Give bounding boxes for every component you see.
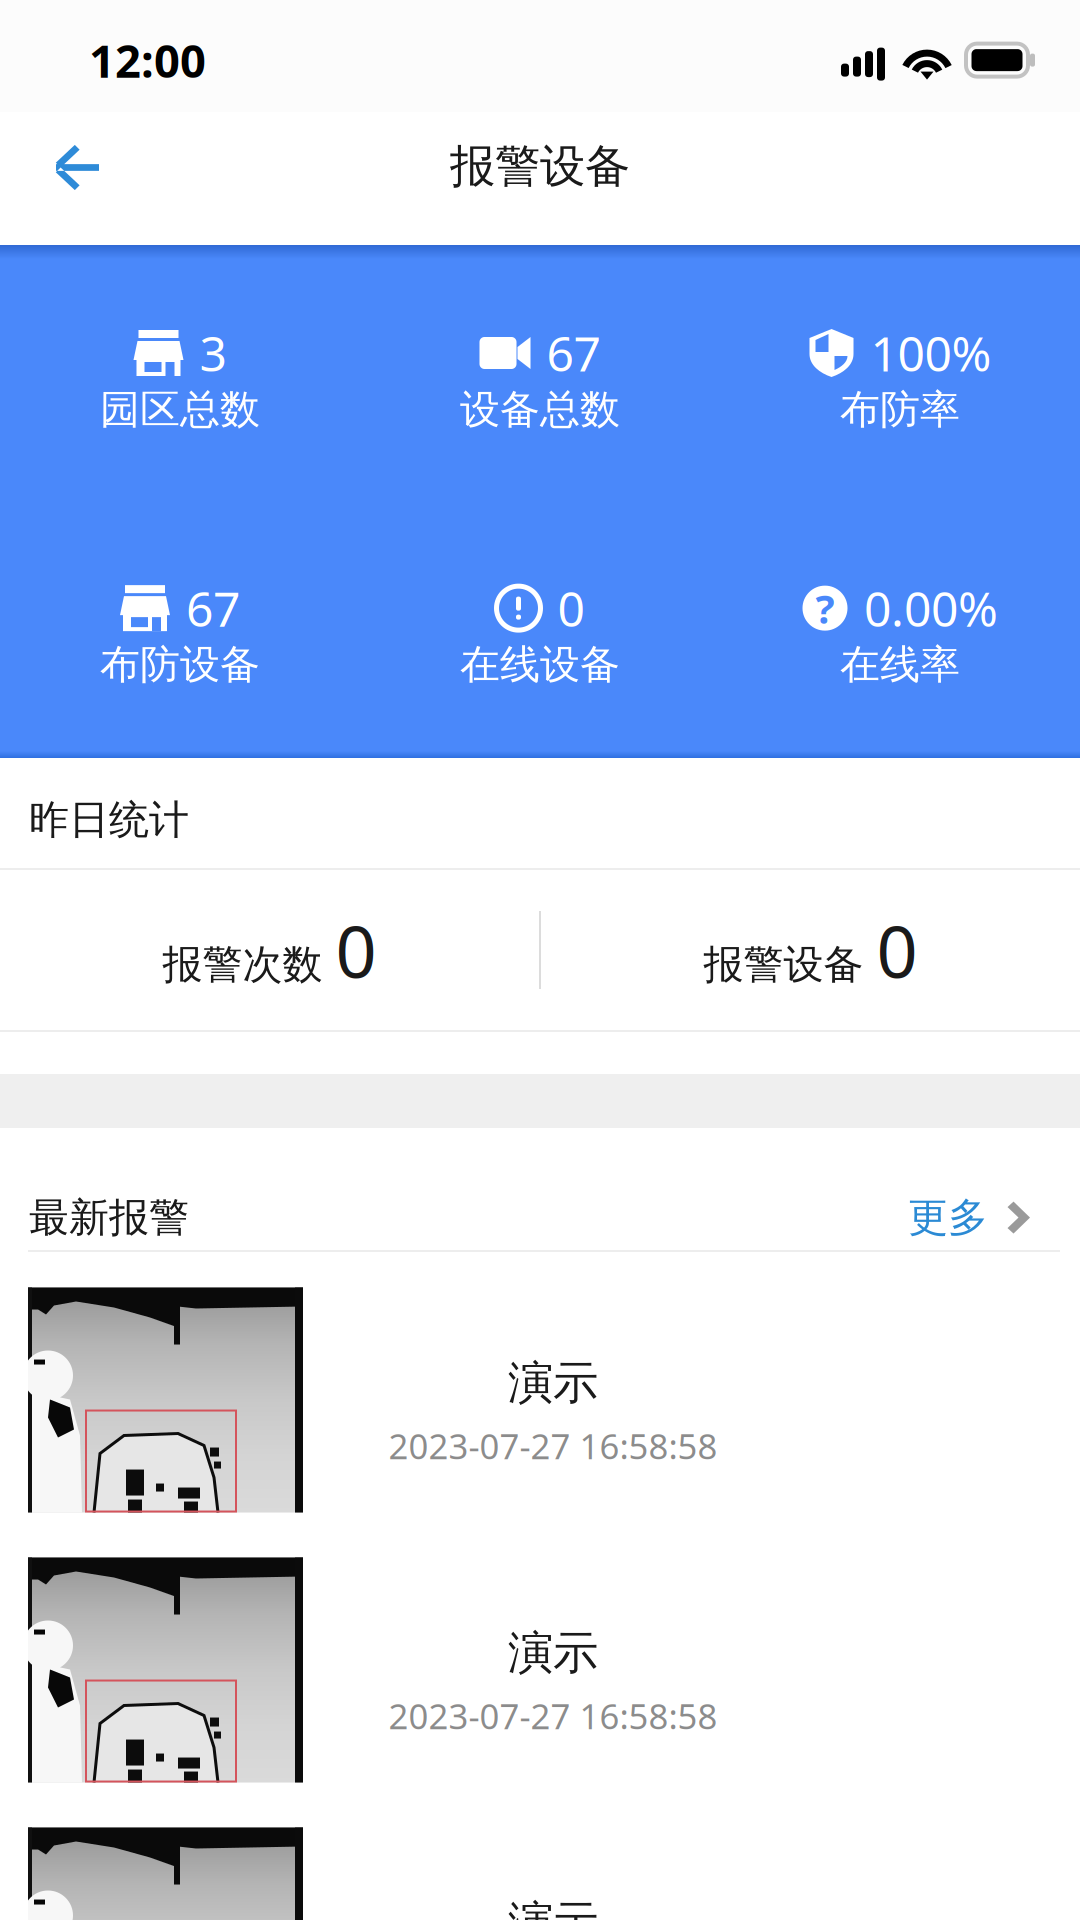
staticText: 设备总数 <box>460 385 620 434</box>
staticText: 12:00 <box>89 30 206 90</box>
staticText: ? <box>815 582 834 635</box>
staticText: 园区总数 <box>100 385 260 434</box>
staticText: 2023-07-27 16:58:58 <box>388 1693 717 1739</box>
button[interactable]: 最新报警 <box>0 1128 1080 1250</box>
staticText: 报警设备 <box>450 139 630 194</box>
button[interactable]: 返回 <box>0 112 160 245</box>
staticText: 67 <box>186 576 240 640</box>
staticText: 0 <box>335 902 376 998</box>
staticText: 报警次数 <box>162 940 322 989</box>
staticText: 报警设备 <box>703 940 863 989</box>
staticText: 在线率 <box>840 640 960 689</box>
staticText: 3 <box>199 321 226 385</box>
button[interactable]: 演示 <box>0 1265 1080 1535</box>
button[interactable]: 演示 <box>0 1805 1080 1920</box>
staticText: 0 <box>557 576 584 640</box>
staticText: 100% <box>870 321 991 385</box>
staticText: 昨日统计 <box>29 795 189 844</box>
staticText: 演示 <box>508 1625 598 1681</box>
staticText: 2023-07-27 16:58:58 <box>388 1423 717 1469</box>
staticText: 0 <box>876 902 917 998</box>
staticText: 演示 <box>508 1355 598 1411</box>
staticText: 最新报警 <box>29 1193 189 1242</box>
staticText: 演示 <box>508 1895 598 1920</box>
button[interactable]: 演示 <box>0 1535 1080 1805</box>
staticText: 更多 <box>908 1193 988 1242</box>
staticText: 0.00% <box>864 576 998 640</box>
staticText: 布防设备 <box>100 640 260 689</box>
staticText: 布防率 <box>840 385 960 434</box>
staticText: 在线设备 <box>460 640 620 689</box>
staticText: 67 <box>546 321 600 385</box>
